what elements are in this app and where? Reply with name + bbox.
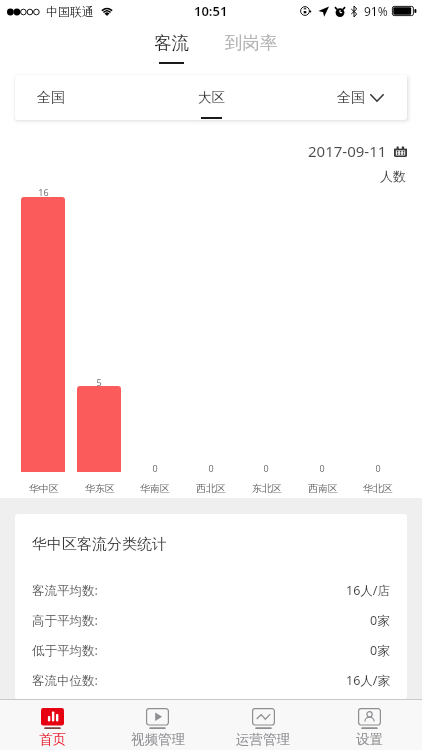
staticText: 客流平均数:: [32, 582, 98, 599]
staticText: 高于平均数:: [32, 612, 98, 629]
button[interactable]: 设置: [316, 700, 422, 750]
button[interactable]: 运营管理: [210, 700, 316, 750]
staticText: 到岗率: [225, 32, 278, 54]
staticText: 10:51: [194, 2, 228, 20]
staticText: 0: [208, 462, 214, 474]
staticText: 视频管理: [131, 731, 185, 748]
staticText: 人数: [380, 168, 406, 184]
other: Pick date: [394, 145, 407, 157]
staticText: 16: [38, 186, 49, 198]
staticText: 0: [263, 462, 269, 474]
staticText: 0: [375, 462, 381, 474]
staticText: 0家: [370, 612, 390, 629]
staticText: 5: [96, 376, 102, 388]
staticText: 设置: [356, 731, 383, 748]
staticText: 0家: [370, 642, 390, 659]
staticText: 华中区: [29, 482, 59, 495]
staticText: 16人/家: [346, 672, 390, 689]
staticText: 客流中位数:: [32, 672, 98, 689]
button[interactable]: 低于平均数:: [15, 635, 407, 665]
staticText: 华中区客流分类统计: [32, 535, 167, 554]
staticText: 华北区: [363, 482, 393, 495]
staticText: 中国联通: [46, 4, 94, 19]
staticText: 0: [152, 462, 158, 474]
staticText: 运营管理: [236, 731, 290, 748]
button[interactable]: 全国: [277, 75, 407, 120]
staticText: 华南区: [140, 482, 170, 495]
staticText: 2017-09-11: [308, 141, 387, 161]
staticText: 16人/店: [346, 582, 390, 599]
staticText: 全国: [337, 89, 365, 107]
staticText: 首页: [39, 731, 66, 748]
staticText: 西北区: [196, 482, 226, 495]
staticText: 东北区: [252, 482, 282, 495]
staticText: 大区: [198, 89, 225, 106]
button[interactable]: 全国: [15, 75, 145, 120]
button[interactable]: 2017-09-11: [308, 141, 422, 161]
staticText: 低于平均数:: [32, 642, 98, 659]
button[interactable]: 客流平均数:: [15, 575, 407, 605]
button[interactable]: 高于平均数:: [15, 605, 407, 635]
button[interactable]: 到岗率: [211, 22, 291, 68]
button[interactable]: 客流: [131, 22, 211, 68]
staticText: 91%: [364, 3, 388, 19]
staticText: 0: [319, 462, 325, 474]
button[interactable]: 客流中位数:: [15, 665, 407, 695]
staticText: 全国: [37, 89, 65, 107]
button[interactable]: 视频管理: [105, 700, 210, 750]
button[interactable]: 大区: [145, 75, 277, 120]
button[interactable]: 首页: [0, 700, 105, 750]
staticText: 华东区: [85, 482, 115, 495]
staticText: 西南区: [308, 482, 338, 495]
staticText: 客流: [154, 32, 189, 54]
